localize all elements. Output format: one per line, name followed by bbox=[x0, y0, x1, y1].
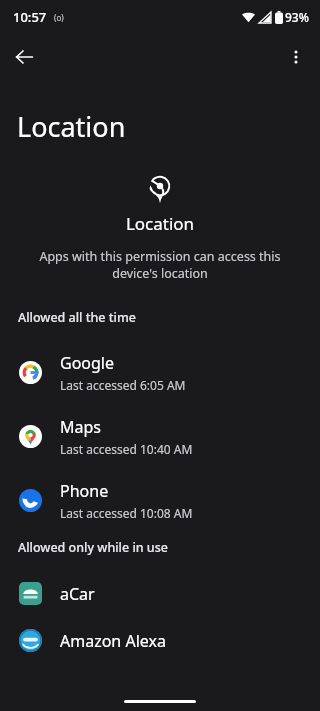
button[interactable]: Amazon Alexa bbox=[0, 617, 320, 664]
button[interactable]: Back bbox=[6, 39, 42, 75]
staticText: Location bbox=[17, 108, 126, 145]
staticText: Allowed all the time bbox=[18, 309, 136, 326]
staticText: (o) bbox=[54, 12, 64, 23]
staticText: aCar bbox=[60, 583, 95, 605]
button[interactable]: More options bbox=[278, 39, 314, 75]
button[interactable]: aCar bbox=[0, 570, 320, 617]
staticText: Amazon Alexa bbox=[60, 630, 166, 652]
staticText: 93% bbox=[285, 9, 309, 25]
staticText: Allowed only while in use bbox=[18, 539, 168, 556]
button[interactable]: Maps bbox=[0, 404, 320, 468]
staticText: 10:57 bbox=[13, 8, 47, 26]
staticText: Last accessed 10:08 AM bbox=[60, 505, 193, 521]
staticText: Maps bbox=[60, 416, 101, 438]
staticText: Phone bbox=[60, 480, 109, 502]
staticText: Last accessed 6:05 AM bbox=[60, 377, 186, 393]
button[interactable]: Phone bbox=[0, 468, 320, 532]
staticText: Location bbox=[0, 212, 320, 235]
staticText: Google bbox=[60, 352, 115, 374]
button[interactable]: Google bbox=[0, 340, 320, 404]
staticText: Apps with this permission can access thi… bbox=[26, 248, 294, 282]
staticText: Last accessed 10:40 AM bbox=[60, 441, 193, 457]
